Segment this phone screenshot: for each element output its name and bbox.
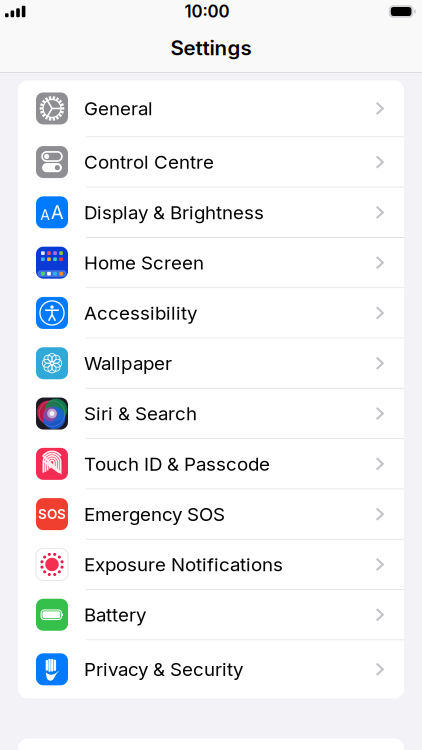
button[interactable]: Touch ID & Passcode	[18, 439, 404, 489]
staticText: Display & Brightness	[84, 201, 264, 224]
staticText: Emergency SOS	[84, 503, 225, 525]
staticText: Touch ID & Passcode	[84, 453, 270, 475]
button[interactable]: Control Centre	[18, 137, 404, 188]
staticText: Wallpaper	[84, 352, 172, 375]
staticText: Settings	[170, 35, 251, 60]
button[interactable]: Exposure Notifications	[18, 540, 404, 590]
staticText: Home Screen	[84, 251, 204, 274]
button[interactable]: Privacy & Security	[18, 640, 404, 698]
staticText: Battery	[84, 603, 146, 626]
button[interactable]: A	[18, 188, 404, 238]
button[interactable]: General	[18, 80, 404, 137]
button[interactable]: Siri & Search	[18, 389, 404, 439]
staticText: Accessibility	[84, 302, 197, 324]
staticText: A	[51, 201, 64, 224]
staticText: 10:00	[185, 1, 230, 22]
staticText: Siri & Search	[84, 402, 197, 425]
staticText: Exposure Notifications	[84, 553, 283, 576]
staticText: Privacy & Security	[84, 658, 243, 681]
staticText: General	[84, 97, 153, 120]
staticText: A	[40, 207, 50, 224]
staticText: SOS	[38, 506, 66, 522]
button[interactable]: Battery	[18, 590, 404, 640]
button[interactable]: Wallpaper	[18, 339, 404, 389]
staticText: Control Centre	[84, 151, 214, 173]
button[interactable]: Home Screen	[18, 238, 404, 288]
button[interactable]: Accessibility	[18, 288, 404, 339]
button[interactable]: SOS	[18, 489, 404, 540]
